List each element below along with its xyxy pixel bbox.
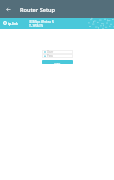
staticText: Router Setup	[20, 6, 56, 14]
button[interactable]: Login	[42, 60, 73, 64]
staticText: User	[47, 50, 54, 54]
button[interactable]: Back	[2, 3, 14, 15]
staticText: 300Mbps Wireless N	[29, 20, 54, 24]
button[interactable]: User	[42, 50, 73, 54]
staticText: TL-WR841N	[29, 24, 44, 28]
button[interactable]: Pass	[42, 54, 73, 58]
staticText: Pass	[47, 54, 53, 58]
staticText: Login	[54, 61, 61, 64]
staticText: tp-link	[8, 22, 18, 26]
